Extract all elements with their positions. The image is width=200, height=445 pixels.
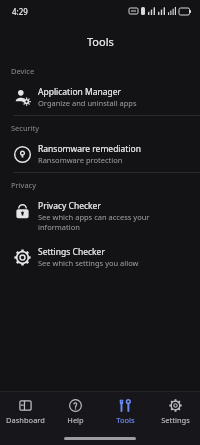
other: Application Manager (14, 89, 31, 106)
staticText: Settings Checker (38, 246, 105, 258)
staticText: Help (67, 415, 84, 425)
staticText: See which settings you allow (38, 258, 139, 268)
staticText: See which apps can access your informati… (38, 212, 186, 232)
other: Privacy Checker (14, 203, 31, 220)
button[interactable]: Settings (150, 392, 200, 432)
button[interactable]: Application Manager (0, 79, 200, 115)
staticText: Security (11, 123, 40, 133)
staticText: Settings (161, 415, 190, 425)
staticText: 4:29 (12, 6, 28, 17)
button[interactable]: Settings Checker (0, 239, 200, 275)
staticText: Device (11, 66, 35, 76)
button[interactable]: Privacy Checker (0, 193, 200, 239)
button[interactable]: Ransomware remediation (0, 136, 200, 172)
other: Ransomware remediation (14, 146, 31, 163)
button[interactable]: Help (50, 392, 100, 432)
staticText: Application Manager (38, 86, 122, 98)
button[interactable]: Tools (100, 392, 150, 432)
staticText: Privacy (11, 180, 37, 190)
staticText: Ransomware remediation (38, 143, 141, 155)
staticText: Tools (116, 415, 135, 425)
button[interactable]: Dashboard (0, 392, 50, 432)
staticText: Tools (87, 34, 114, 49)
staticText: Privacy Checker (38, 200, 101, 212)
staticText: Ransomware protection (38, 155, 123, 165)
staticText: Dashboard (6, 415, 45, 425)
staticText: Organize and uninstall apps (38, 98, 137, 108)
other: Settings Checker (14, 249, 31, 266)
